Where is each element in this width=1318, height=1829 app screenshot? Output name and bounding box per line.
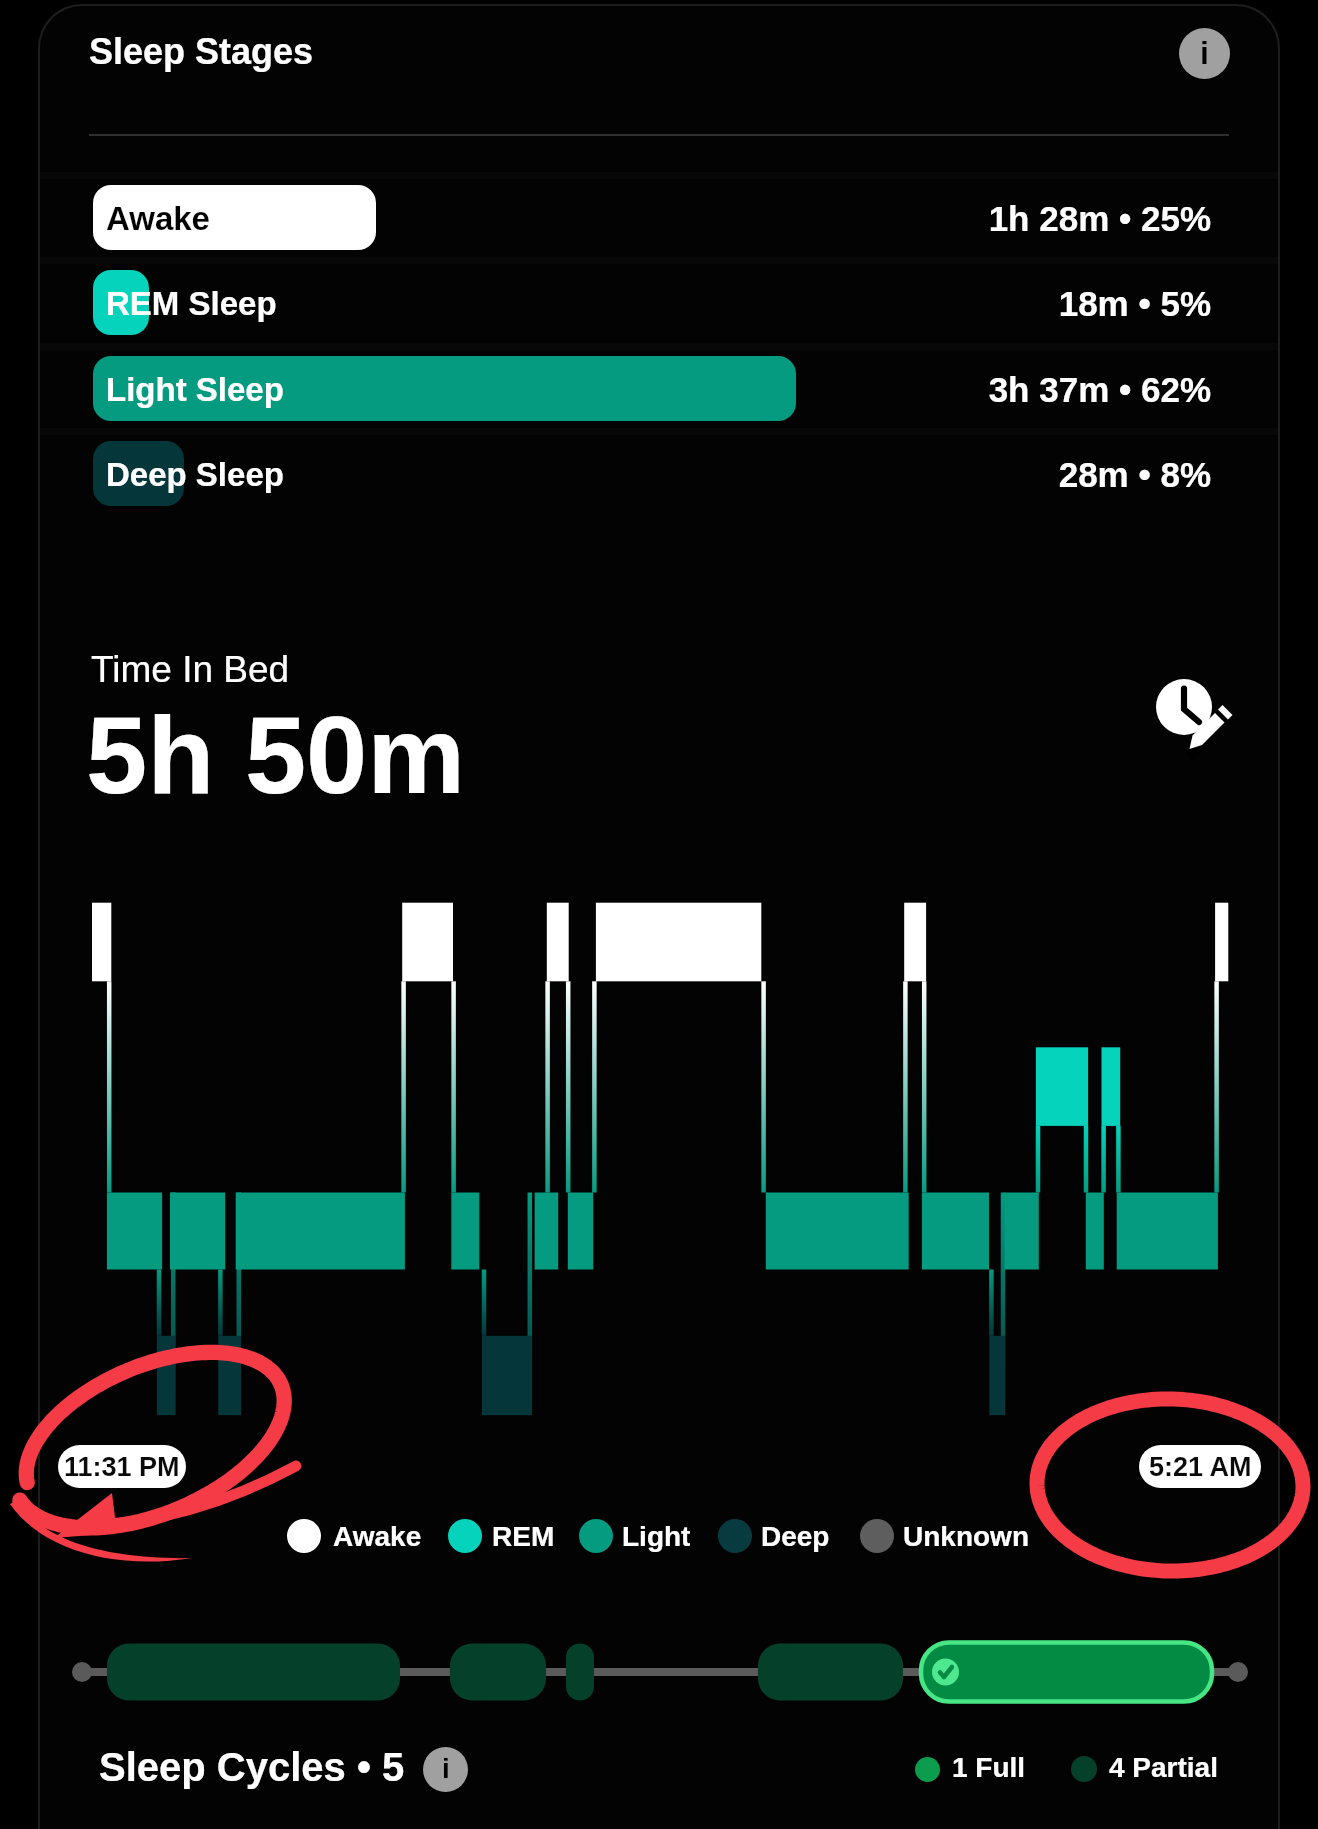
staticText: i xyxy=(442,1753,450,1784)
button[interactable]: Sleep cycle timeline xyxy=(70,1636,1250,1708)
staticText: 5h 50m xyxy=(86,693,466,816)
button[interactable] xyxy=(89,1735,479,1807)
staticText: Sleep Cycles • 5 xyxy=(99,1745,405,1790)
button[interactable] xyxy=(40,431,1278,516)
staticText: 18m • 5% xyxy=(611,284,1211,323)
button[interactable] xyxy=(40,175,1278,260)
staticText: 3h 37m • 62% xyxy=(611,370,1211,409)
staticText: REM Sleep xyxy=(106,285,277,322)
staticText: Awake xyxy=(106,200,210,237)
staticText: Deep Sleep xyxy=(106,456,284,493)
staticText: 4 Partial xyxy=(1109,1752,1218,1783)
button[interactable] xyxy=(40,260,1278,345)
staticText: Awake xyxy=(333,1521,422,1552)
staticText: i xyxy=(1200,35,1209,71)
staticText: REM xyxy=(492,1521,555,1552)
staticText: 1h 28m • 25% xyxy=(611,199,1211,238)
staticText: 1 Full xyxy=(952,1752,1026,1783)
staticText: Deep xyxy=(761,1521,830,1552)
button[interactable] xyxy=(40,346,1278,431)
button[interactable] xyxy=(89,645,489,800)
staticText: 5:21 AM xyxy=(1149,1452,1252,1482)
staticText: Light xyxy=(622,1521,691,1552)
staticText: Unknown xyxy=(903,1521,1029,1552)
staticText: Sleep Stages xyxy=(89,31,314,71)
button[interactable]: 5:21 AM xyxy=(1139,1445,1261,1488)
button[interactable] xyxy=(40,5,1278,113)
staticText: 11:31 PM xyxy=(64,1452,180,1482)
staticText: Light Sleep xyxy=(106,371,284,408)
button[interactable]: Edit time in bed xyxy=(1155,678,1237,760)
staticText: 28m • 8% xyxy=(611,455,1211,494)
button[interactable]: 11:31 PM xyxy=(58,1445,186,1488)
button[interactable]: Sleep stages info xyxy=(1179,28,1230,79)
staticText: Time In Bed xyxy=(91,649,290,690)
button[interactable]: Sleep cycles info xyxy=(423,1747,468,1792)
